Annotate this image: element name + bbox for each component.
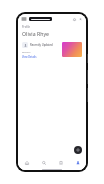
- button[interactable]: View Details: [22, 55, 37, 58]
- button[interactable]: Saved: [52, 157, 69, 168]
- staticText: View Details: [22, 55, 37, 58]
- button[interactable]: Search: [35, 157, 52, 168]
- button[interactable]: Profile: [69, 157, 86, 168]
- button[interactable]: Account: [77, 16, 83, 22]
- button[interactable]: Recently Updated: [21, 40, 83, 62]
- staticText: Profile: [22, 25, 31, 29]
- button[interactable]: Home: [18, 157, 35, 168]
- staticText: DETAILS: [22, 51, 31, 54]
- staticText: Olivia Rhye: [22, 30, 49, 37]
- button[interactable]: Notifications: [71, 16, 77, 22]
- button[interactable]: Compose: [74, 146, 82, 154]
- button[interactable]: Profile image: [62, 42, 82, 57]
- button[interactable]: Menu: [21, 16, 27, 22]
- button[interactable]: [29, 17, 52, 21]
- staticText: Recently Updated: [30, 43, 53, 47]
